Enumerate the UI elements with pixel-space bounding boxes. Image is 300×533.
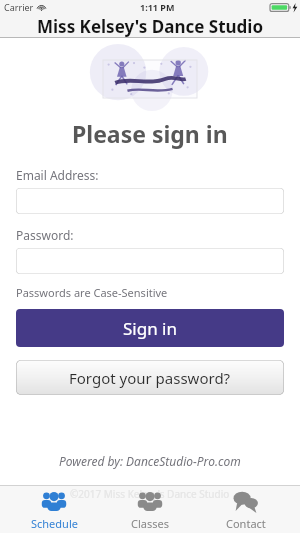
button[interactable]: Forgot your password? xyxy=(16,360,284,395)
button[interactable]: Schedule xyxy=(12,485,96,533)
staticText: Forgot your password? xyxy=(69,368,231,388)
staticText: Powered by: DanceStudio-Pro.com xyxy=(59,453,241,469)
staticText: Schedule xyxy=(31,516,78,531)
staticText: Email Address: xyxy=(16,167,99,183)
staticText: Miss Kelsey's Dance Studio xyxy=(37,15,264,38)
staticText: 1:11 PM xyxy=(140,1,175,13)
staticText: Passwords are Case-Sensitive xyxy=(16,285,168,300)
staticText: Contact xyxy=(226,516,266,531)
staticText: Classes xyxy=(131,516,169,531)
staticText: Password: xyxy=(16,227,74,243)
button[interactable]: Contact xyxy=(204,485,288,533)
staticText: ©2017 Miss Kelsey's Dance Studio xyxy=(70,487,230,501)
staticText: Please sign in xyxy=(72,118,228,149)
staticText: Sign in xyxy=(123,317,177,340)
button[interactable]: Sign in xyxy=(16,309,284,347)
button[interactable]: Classes xyxy=(108,485,192,533)
staticText: Carrier xyxy=(4,1,34,13)
button[interactable] xyxy=(16,188,284,214)
button[interactable] xyxy=(16,248,284,274)
